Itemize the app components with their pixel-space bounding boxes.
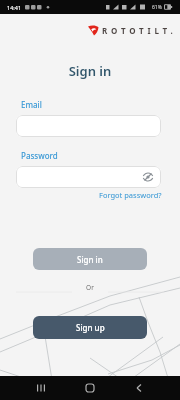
- staticText: Sign up: [76, 322, 105, 333]
- button[interactable]: [124, 376, 154, 400]
- staticText: Or: [0, 283, 180, 292]
- staticText: ROTOTILT.: [102, 25, 177, 36]
- button[interactable]: Sign up: [33, 316, 147, 339]
- staticText: 14:41: [7, 4, 22, 11]
- button[interactable]: [16, 115, 161, 137]
- staticText: 61%: [152, 4, 162, 11]
- staticText: Email: [21, 99, 42, 110]
- button[interactable]: Forgot password?: [99, 190, 162, 200]
- button[interactable]: [26, 376, 55, 400]
- staticText: Password: [21, 150, 58, 161]
- button[interactable]: [75, 376, 105, 400]
- button[interactable]: [16, 166, 161, 188]
- staticText: Sign in: [77, 254, 103, 265]
- button[interactable]: Sign in: [33, 248, 147, 270]
- staticText: Sign in: [0, 62, 180, 80]
